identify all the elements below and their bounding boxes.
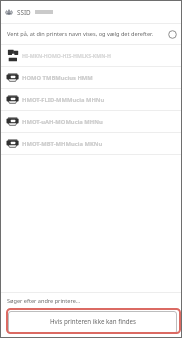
button[interactable]: HI-MKN-HOMO-HIS-HMLKS-KMN-H [1,45,181,66]
staticText: Hvis printeren ikke kan findes [50,317,137,325]
button[interactable]: HMOT-uAH-MOMucia MHNu [1,111,181,132]
staticText: HOMO TMBMucius HMM [22,74,93,82]
staticText: Vent på, at din printers navn vises, og … [7,30,153,38]
staticText: HMOT-FLID-MMMucia MHNu [22,96,105,104]
staticText: HMOT-uAH-MOMucia MHNu [22,118,103,126]
button[interactable]: HMOT-MBT-MHMucia MKNu [1,133,181,154]
button[interactable]: HMOT-FLID-MMMucia MHNu [1,89,181,110]
staticText: HMOT-MBT-MHMucia MKNu [22,140,103,148]
staticText: SSID [17,8,31,17]
button[interactable]: Hjælp [168,30,177,39]
staticText: Søger efter andre printere... [7,297,81,305]
staticText: HI-MKN-HOMO-HIS-HMLKS-KMN-H [22,52,111,59]
button[interactable]: HOMO TMBMucius HMM [1,67,181,88]
button[interactable]: SSID [1,1,181,23]
button[interactable]: Hvis printeren ikke kan findes [6,308,181,334]
